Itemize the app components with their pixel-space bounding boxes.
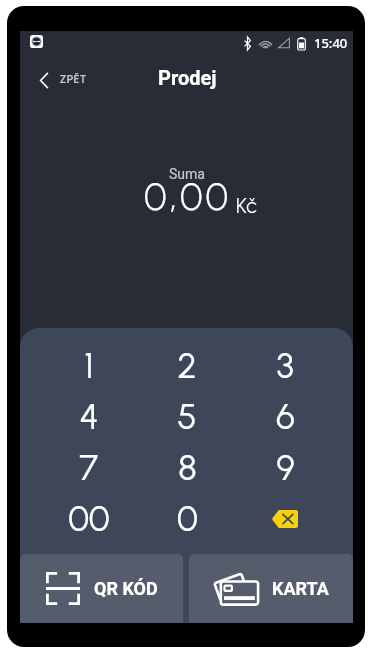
staticText: 5: [177, 396, 197, 438]
staticText: 9: [276, 447, 295, 489]
staticText: Prodej: [158, 66, 217, 89]
staticText: 4: [79, 396, 99, 438]
staticText: Suma: [169, 166, 205, 182]
staticText: KARTA: [272, 578, 329, 599]
button[interactable]: 8: [138, 442, 236, 493]
staticText: 6: [276, 396, 295, 438]
staticText: 3: [276, 345, 294, 387]
button[interactable]: 0: [138, 493, 236, 544]
staticText: 7: [79, 447, 98, 489]
button[interactable]: 4: [39, 391, 138, 442]
staticText: 8: [178, 447, 197, 489]
button[interactable]: 5: [138, 391, 236, 442]
staticText: ZPĚT: [60, 74, 87, 86]
other: Remote support: [30, 35, 43, 48]
staticText: 2: [177, 345, 197, 387]
staticText: 15:40: [314, 34, 348, 52]
button[interactable]: 6: [236, 391, 334, 442]
button[interactable]: 7: [39, 442, 138, 493]
button[interactable]: 2: [138, 340, 236, 391]
button[interactable]: 3: [236, 340, 334, 391]
button[interactable]: ZPĚT: [34, 62, 93, 93]
button[interactable]: Backspace: [236, 493, 334, 544]
staticText: QR KÓD: [94, 578, 158, 599]
staticText: 00: [68, 498, 110, 540]
staticText: 0,00: [144, 174, 232, 220]
staticText: 0: [177, 498, 198, 540]
staticText: Kč: [236, 193, 257, 218]
button[interactable]: 9: [236, 442, 334, 493]
button[interactable]: 00: [39, 493, 138, 544]
button[interactable]: 1: [39, 340, 138, 391]
button[interactable]: QR KÓD: [20, 554, 183, 623]
staticText: 1: [84, 345, 94, 387]
button[interactable]: KARTA: [189, 554, 353, 623]
